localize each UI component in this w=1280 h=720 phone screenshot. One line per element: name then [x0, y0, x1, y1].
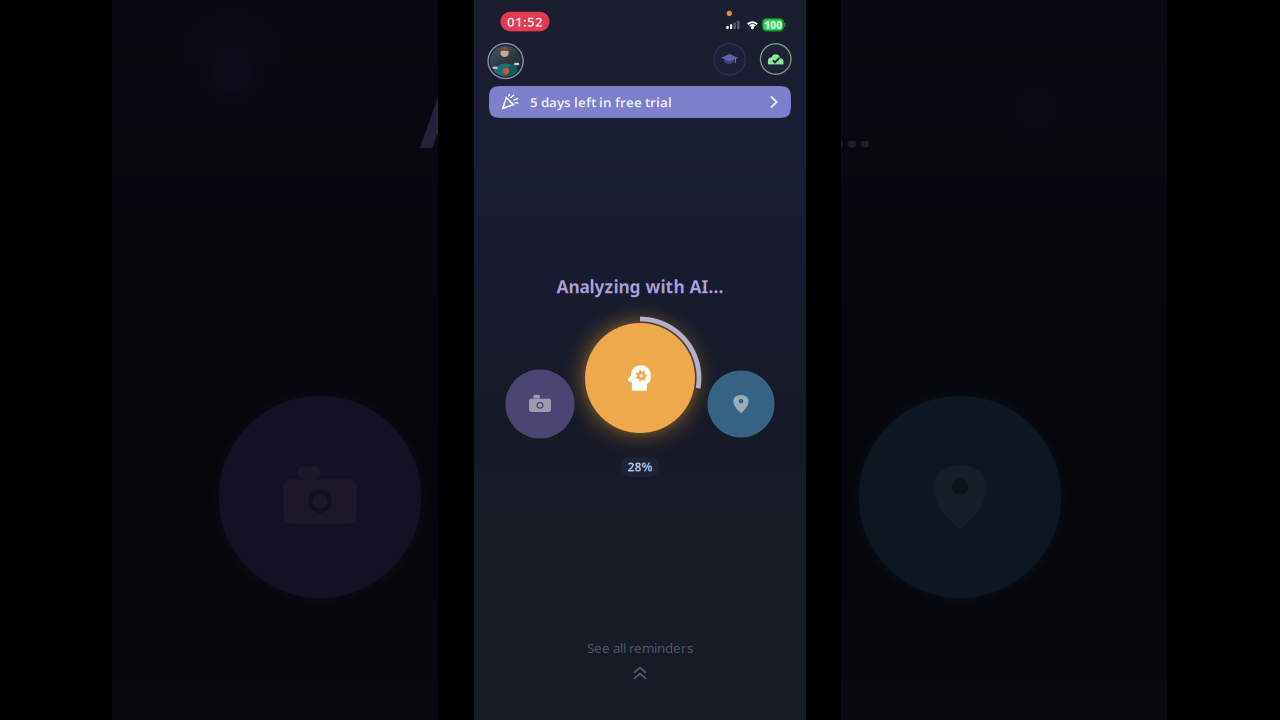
button[interactable]: Tutorials [713, 42, 747, 76]
staticText: A [420, 69, 472, 169]
staticText: See all reminders [587, 639, 693, 657]
button[interactable]: Backed up [759, 42, 793, 76]
staticText: 01:52 [507, 13, 543, 30]
staticText: 28% [627, 459, 652, 475]
button[interactable]: 5 days left in free trial [489, 86, 791, 118]
staticText: 5 days left in free trial [530, 93, 672, 111]
button[interactable]: Profile [488, 43, 524, 79]
staticText: 100 [764, 18, 782, 32]
staticText: ... [832, 100, 871, 160]
button[interactable]: Add location [707, 370, 774, 437]
button[interactable]: Add photo [505, 369, 574, 438]
button[interactable]: See all reminders [474, 639, 806, 680]
staticText: Analyzing with AI... [556, 275, 723, 298]
